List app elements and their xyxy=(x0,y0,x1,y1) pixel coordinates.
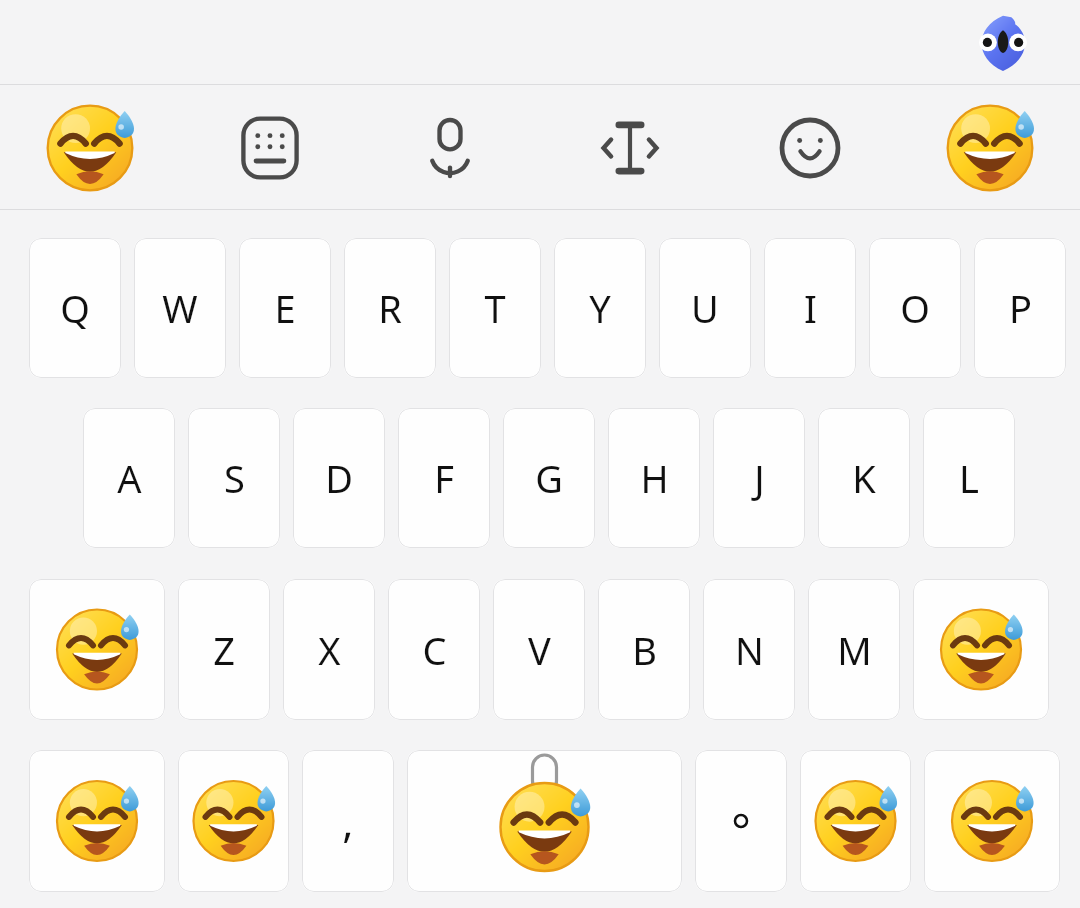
staticText: D xyxy=(325,452,353,504)
button[interactable]: Emoji xyxy=(28,86,152,210)
staticText: Q xyxy=(60,282,90,334)
button[interactable]: Stickers xyxy=(748,86,872,210)
staticText: , xyxy=(342,793,354,850)
button[interactable]: L xyxy=(923,408,1015,548)
button[interactable]: Backspace xyxy=(913,579,1049,720)
button[interactable]: Space xyxy=(407,750,682,892)
button[interactable]: E xyxy=(239,238,331,378)
button[interactable]: Z xyxy=(178,579,270,720)
button[interactable]: Move cursor xyxy=(568,86,692,210)
button[interactable]: O xyxy=(869,238,961,378)
button[interactable]: Emoji xyxy=(800,750,911,892)
button[interactable]: Language xyxy=(178,750,289,892)
button[interactable]: Emoji picker xyxy=(928,86,1052,210)
staticText: B xyxy=(632,624,657,676)
staticText: M xyxy=(837,624,872,676)
staticText: T xyxy=(484,282,506,334)
button[interactable]: A xyxy=(83,408,175,548)
button[interactable]: T xyxy=(449,238,541,378)
button[interactable]: P xyxy=(974,238,1066,378)
button[interactable]: . xyxy=(695,750,787,892)
staticText: U xyxy=(691,282,719,334)
staticText: Y xyxy=(589,282,611,334)
button[interactable]: U xyxy=(659,238,751,378)
staticText: R xyxy=(378,282,402,334)
button[interactable]: X xyxy=(283,579,375,720)
staticText: V xyxy=(528,624,551,676)
staticText: H xyxy=(640,452,669,504)
button[interactable]: N xyxy=(703,579,795,720)
staticText: G xyxy=(535,452,563,504)
button[interactable]: B xyxy=(598,579,690,720)
button[interactable]: Keyboard settings xyxy=(208,86,332,210)
button[interactable]: C xyxy=(388,579,480,720)
button[interactable]: Symbols xyxy=(29,750,165,892)
staticText: O xyxy=(900,282,930,334)
button[interactable]: V xyxy=(493,579,585,720)
staticText: Z xyxy=(213,624,235,676)
staticText: X xyxy=(318,624,341,676)
button[interactable]: G xyxy=(503,408,595,548)
button[interactable]: Y xyxy=(554,238,646,378)
button[interactable]: , xyxy=(302,750,394,892)
button[interactable]: M xyxy=(808,579,900,720)
button[interactable]: I xyxy=(764,238,856,378)
staticText: S xyxy=(224,452,245,504)
staticText: L xyxy=(959,452,979,504)
button[interactable]: Voice input xyxy=(388,86,512,210)
staticText: N xyxy=(735,624,764,676)
button[interactable]: K xyxy=(818,408,910,548)
button[interactable]: Shift xyxy=(29,579,165,720)
staticText: C xyxy=(422,624,447,676)
button[interactable]: Assistant xyxy=(972,12,1034,74)
staticText: K xyxy=(852,452,876,504)
button[interactable]: Q xyxy=(29,238,121,378)
staticText: A xyxy=(117,452,142,504)
staticText: W xyxy=(162,282,198,334)
button[interactable]: S xyxy=(188,408,280,548)
button[interactable]: R xyxy=(344,238,436,378)
staticText: P xyxy=(1009,282,1032,334)
button[interactable]: Enter xyxy=(924,750,1060,892)
staticText: J xyxy=(754,452,765,504)
staticText: I xyxy=(804,282,817,334)
button[interactable]: H xyxy=(608,408,700,548)
staticText: E xyxy=(274,282,296,334)
button[interactable]: W xyxy=(134,238,226,378)
button[interactable]: F xyxy=(398,408,490,548)
button[interactable]: J xyxy=(713,408,805,548)
staticText: F xyxy=(434,452,454,504)
button[interactable]: D xyxy=(293,408,385,548)
